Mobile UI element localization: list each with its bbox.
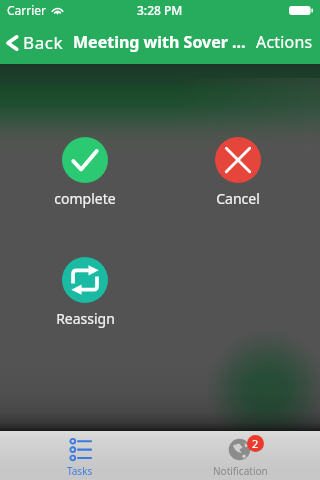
staticText: Cancel bbox=[216, 189, 260, 208]
staticText: complete bbox=[54, 189, 116, 208]
staticText: Back bbox=[23, 31, 64, 54]
button[interactable]: Actions bbox=[250, 25, 320, 59]
button[interactable]: 2 bbox=[160, 431, 320, 480]
staticText: Reassign bbox=[56, 309, 115, 328]
staticText: Actions bbox=[256, 31, 313, 53]
staticText: Carrier bbox=[7, 2, 47, 18]
button[interactable]: Tasks bbox=[0, 431, 160, 480]
staticText: Notification bbox=[213, 464, 268, 478]
button[interactable]: complete bbox=[20, 137, 150, 208]
staticText: Meeting with Sover ... bbox=[73, 31, 246, 53]
staticText: Tasks bbox=[67, 464, 93, 478]
button[interactable]: Reassign bbox=[20, 257, 150, 328]
button[interactable]: Back bbox=[0, 26, 67, 59]
staticText: 2 bbox=[252, 436, 259, 451]
staticText: 3:28 PM bbox=[137, 2, 183, 18]
button[interactable]: Cancel bbox=[173, 137, 303, 208]
